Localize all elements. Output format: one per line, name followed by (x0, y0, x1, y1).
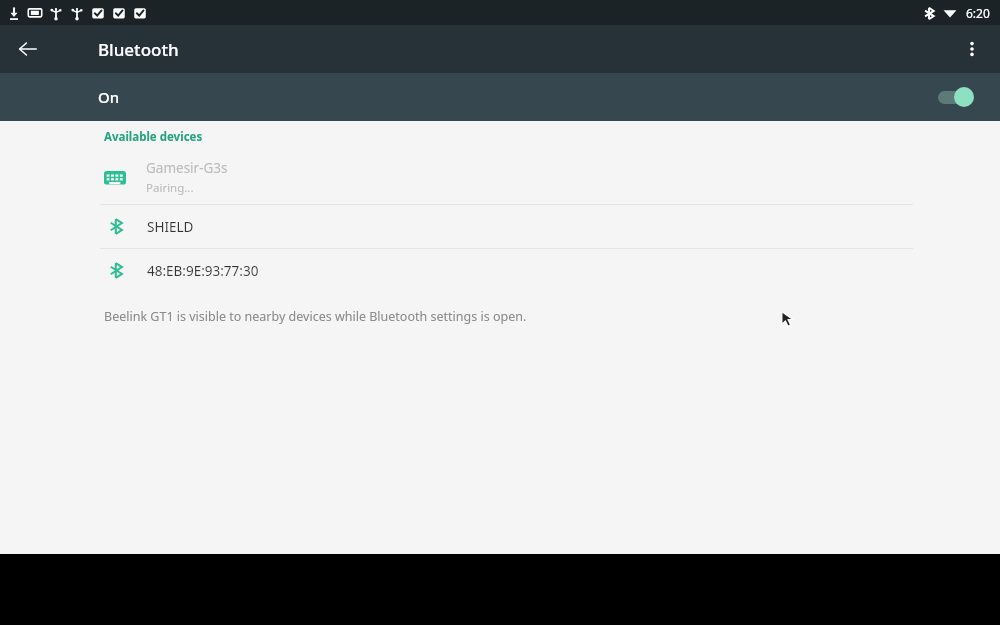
staticText: Available devices (104, 129, 203, 145)
staticText: 6:20 (966, 5, 990, 21)
button[interactable]: Back (10, 31, 46, 67)
staticText: Bluetooth (98, 38, 179, 61)
staticText: On (98, 87, 120, 107)
button[interactable]: On (0, 73, 1000, 121)
staticText: SHIELD (147, 218, 194, 236)
staticText: Beelink GT1 is visible to nearby devices… (104, 308, 527, 325)
button[interactable]: More options (952, 29, 992, 69)
button[interactable]: 48:EB:9E:93:77:30 (0, 249, 1000, 292)
staticText: 48:EB:9E:93:77:30 (147, 262, 259, 280)
staticText: Gamesir-G3s (146, 159, 228, 177)
button[interactable]: SHIELD (0, 205, 1000, 248)
other: Bluetooth toggle (934, 85, 978, 109)
button[interactable]: Gamesir-G3s (0, 151, 1000, 204)
staticText: Pairing... (146, 180, 194, 196)
